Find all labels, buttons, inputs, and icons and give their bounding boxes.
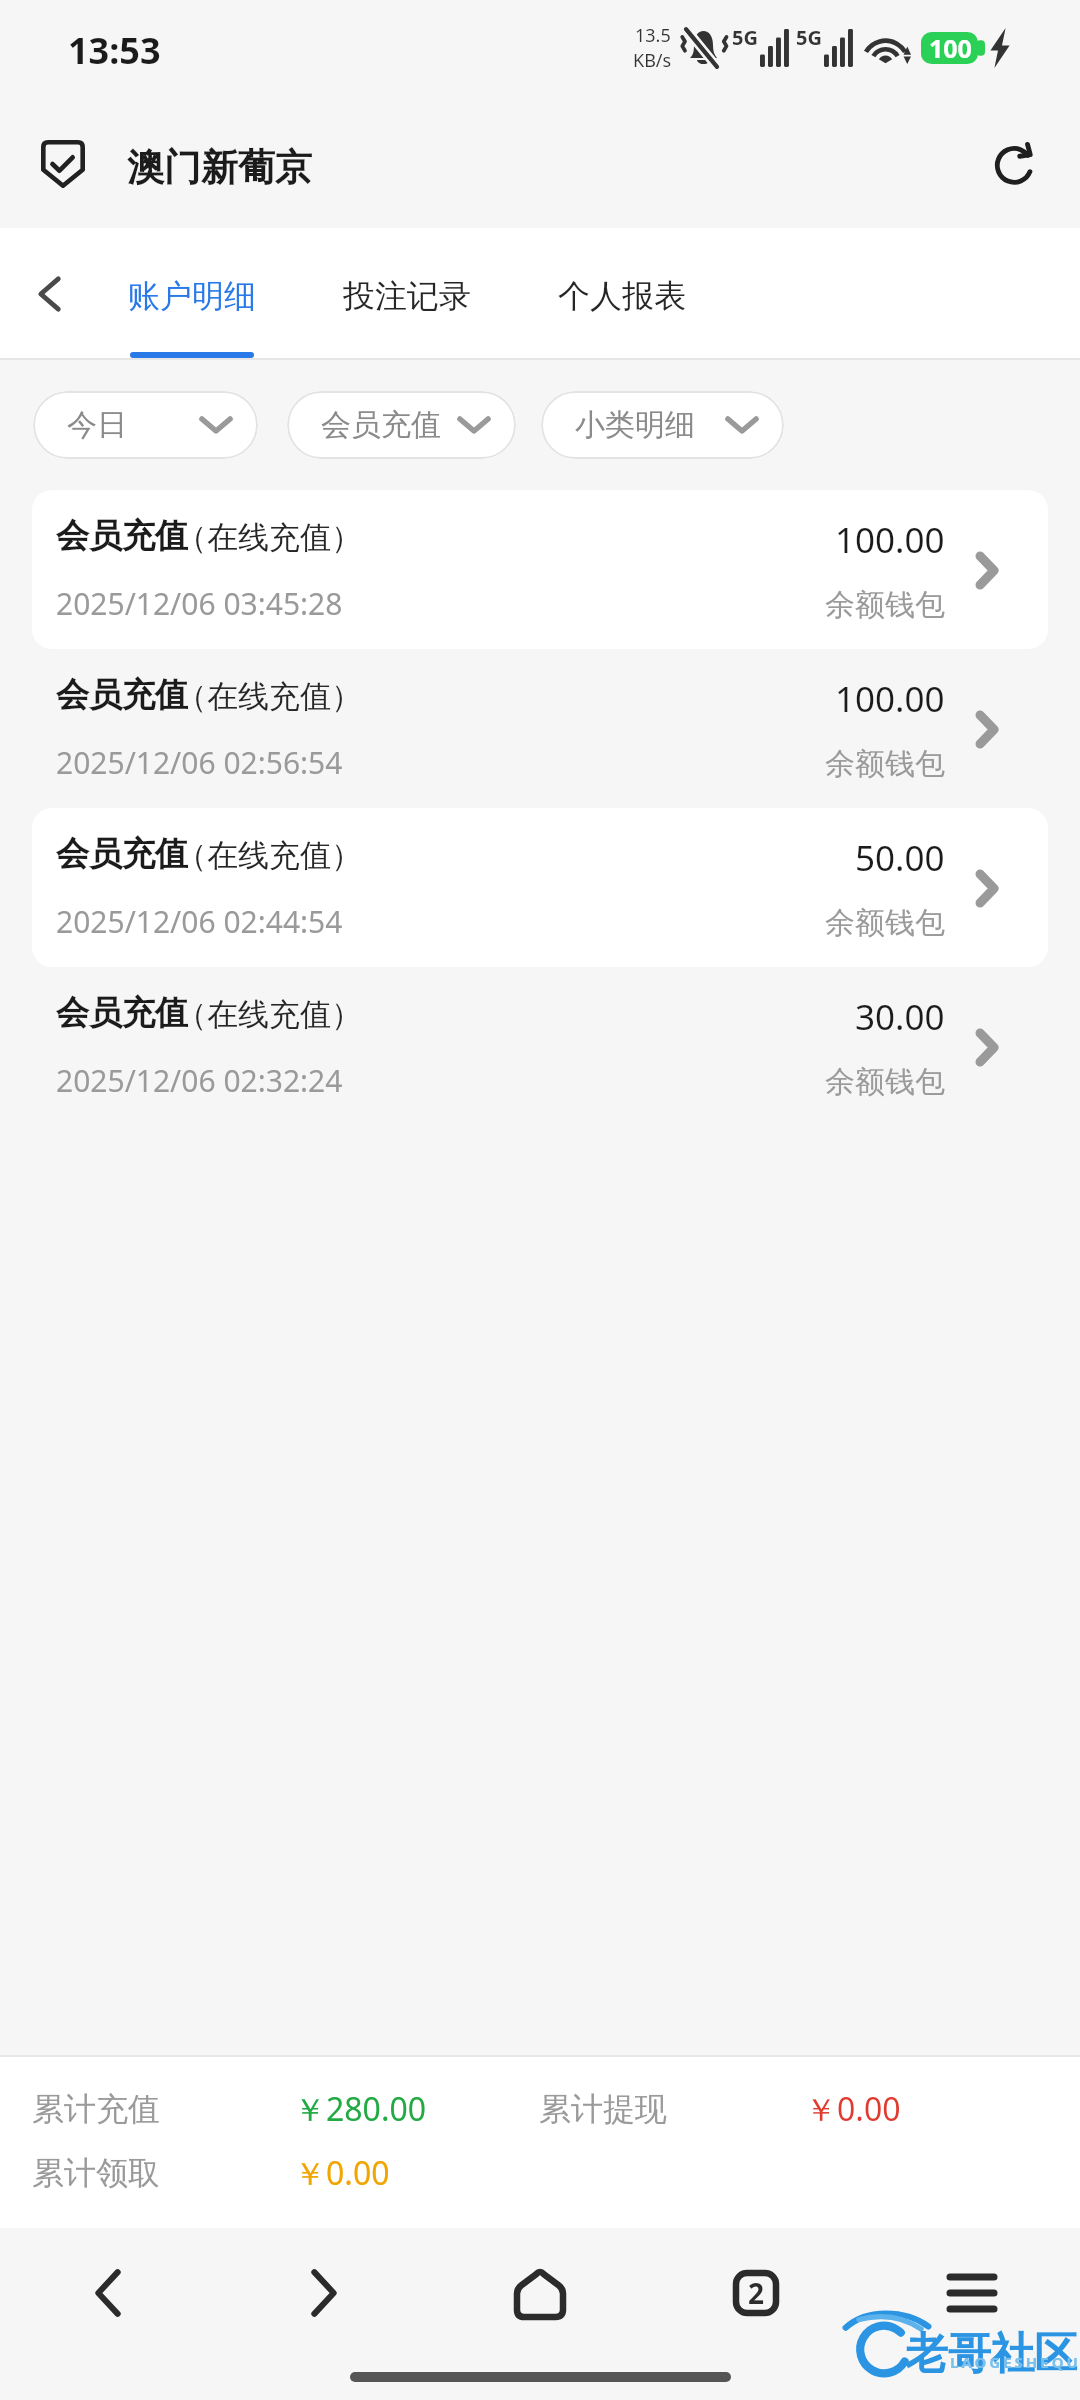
staticText: 30.00 bbox=[855, 993, 945, 1041]
staticText: 会员充值 bbox=[56, 515, 188, 557]
staticText: 余额钱包 bbox=[825, 904, 945, 942]
button[interactable]: 会员充值 bbox=[32, 967, 1048, 1126]
staticText: 账户明细 bbox=[128, 276, 256, 316]
staticText: 小类明细 bbox=[575, 406, 695, 444]
staticText: 会员充值 bbox=[56, 674, 188, 716]
staticText: 余额钱包 bbox=[825, 745, 945, 783]
staticText: 澳门新葡京 bbox=[127, 144, 312, 191]
button[interactable]: 会员充值 bbox=[287, 391, 516, 459]
staticText: （在线充值） bbox=[176, 677, 362, 716]
staticText: ￥0.00 bbox=[805, 2087, 901, 2131]
button[interactable]: 今日 bbox=[33, 391, 258, 459]
staticText: 余额钱包 bbox=[825, 1063, 945, 1101]
staticText: 累计提现 bbox=[539, 2089, 805, 2129]
button[interactable]: Forward bbox=[216, 2228, 432, 2358]
staticText: 累计充值 bbox=[32, 2089, 294, 2129]
staticText: 会员充值 bbox=[321, 406, 441, 444]
staticText: 2025/12/06 02:56:54 bbox=[56, 742, 343, 783]
staticText: 2 bbox=[748, 2274, 765, 2312]
button[interactable]: Back bbox=[0, 228, 100, 360]
staticText: 余额钱包 bbox=[825, 586, 945, 624]
staticText: 100.00 bbox=[835, 675, 945, 723]
staticText: 2025/12/06 02:44:54 bbox=[56, 901, 343, 942]
staticText: ￥280.00 bbox=[294, 2087, 539, 2131]
staticText: 50.00 bbox=[855, 834, 945, 882]
staticText: （在线充值） bbox=[176, 995, 362, 1034]
button[interactable]: Back bbox=[0, 2228, 216, 2358]
staticText: 会员充值 bbox=[56, 833, 188, 875]
staticText: 13.5 bbox=[635, 23, 671, 48]
staticText: （在线充值） bbox=[176, 518, 362, 557]
button[interactable]: 投注记录 bbox=[315, 228, 499, 360]
button[interactable]: Refresh bbox=[985, 133, 1047, 195]
staticText: LAOGESHEQU bbox=[950, 2352, 1080, 2372]
button[interactable]: Home bbox=[432, 2228, 648, 2358]
button[interactable]: 账户明细 bbox=[100, 228, 284, 360]
staticText: 会员充值 bbox=[56, 992, 188, 1034]
staticText: 今日 bbox=[67, 406, 127, 444]
staticText: 13:53 bbox=[68, 26, 161, 75]
button[interactable]: 个人报表 bbox=[530, 228, 714, 360]
staticText: 5G bbox=[796, 24, 822, 51]
button[interactable]: Secure site bbox=[39, 140, 87, 188]
staticText: 2025/12/06 02:32:24 bbox=[56, 1060, 343, 1101]
button[interactable]: Tabs bbox=[648, 2228, 864, 2358]
staticText: 100 bbox=[929, 31, 972, 65]
staticText: ￥0.00 bbox=[294, 2151, 390, 2195]
staticText: 投注记录 bbox=[343, 276, 471, 316]
button[interactable]: 会员充值 bbox=[32, 490, 1048, 649]
button[interactable]: 小类明细 bbox=[541, 391, 784, 459]
staticText: 100.00 bbox=[835, 516, 945, 564]
button[interactable]: 会员充值 bbox=[32, 649, 1048, 808]
staticText: 累计领取 bbox=[32, 2153, 294, 2193]
staticText: KB/s bbox=[633, 48, 672, 73]
staticText: （在线充值） bbox=[176, 836, 362, 875]
staticText: 2025/12/06 03:45:28 bbox=[56, 583, 343, 624]
staticText: 个人报表 bbox=[558, 276, 686, 316]
button[interactable]: Menu bbox=[864, 2228, 1080, 2358]
button[interactable]: 会员充值 bbox=[32, 808, 1048, 967]
staticText: 老哥社区 bbox=[905, 2327, 1077, 2381]
staticText: 5G bbox=[732, 24, 758, 51]
